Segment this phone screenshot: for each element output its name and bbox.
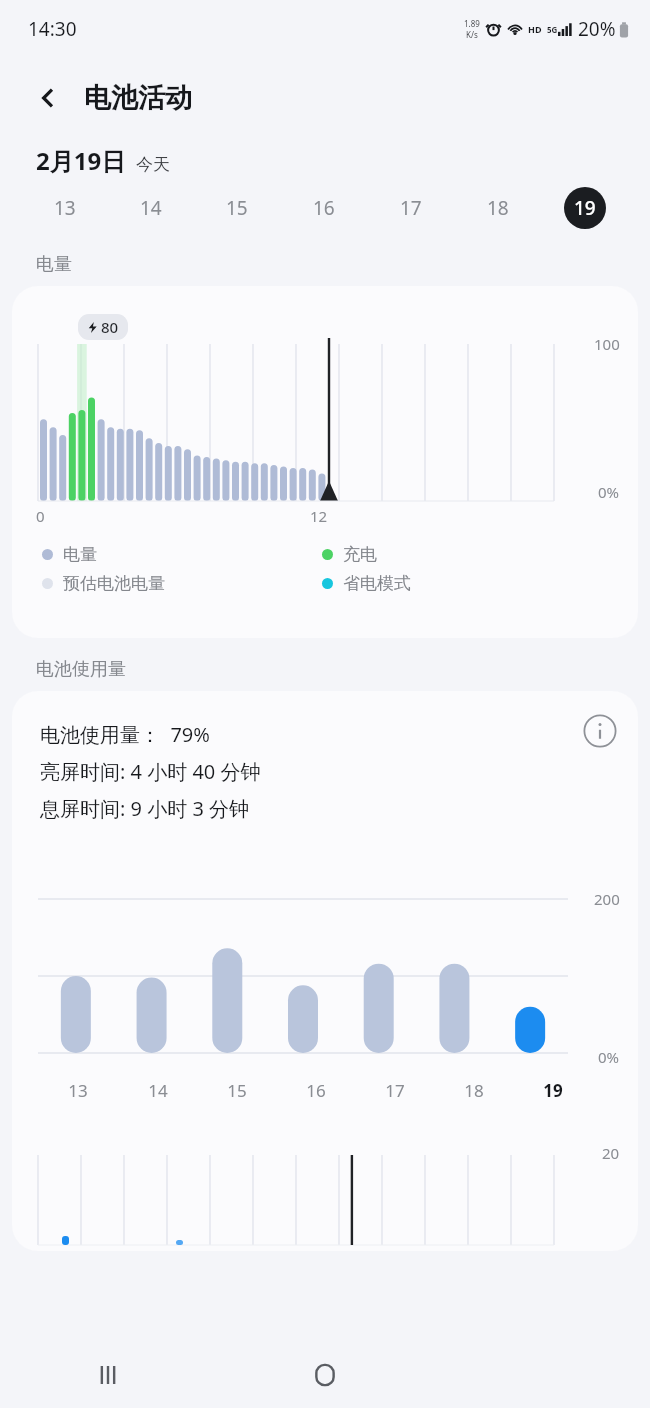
staticText: 80 xyxy=(101,317,119,337)
staticText: HD xyxy=(528,23,542,35)
staticText: 电量 xyxy=(63,544,97,565)
button[interactable]: 预估电池电量 xyxy=(42,573,322,594)
staticText: 电池使用量 xyxy=(36,658,126,681)
staticText: 12 xyxy=(310,506,328,526)
staticText: 今天 xyxy=(136,154,170,175)
button[interactable]: 14 xyxy=(108,177,194,239)
staticText: 0% xyxy=(598,482,620,502)
staticText: 100 xyxy=(594,334,620,354)
staticText: 省电模式 xyxy=(343,573,411,594)
staticText: 17 xyxy=(400,195,422,221)
button[interactable]: 电池使用量： 79% xyxy=(12,691,638,1251)
staticText: 1.89 xyxy=(464,18,480,29)
button[interactable]: Back xyxy=(24,74,72,122)
button[interactable]: 电量 xyxy=(42,544,322,565)
button[interactable]: 100 xyxy=(12,286,638,638)
staticText: 20 xyxy=(602,1143,620,1163)
staticText: 电池使用量： 79% xyxy=(40,721,210,748)
staticText: 19 xyxy=(543,1079,563,1102)
staticText: 14 xyxy=(140,195,162,221)
staticText: 电量 xyxy=(36,253,72,276)
staticText: 200 xyxy=(594,889,620,909)
button[interactable]: 13 xyxy=(22,177,108,239)
staticText: 17 xyxy=(385,1079,405,1102)
button[interactable]: 19 xyxy=(541,177,628,239)
staticText: K/s xyxy=(466,29,478,40)
button[interactable]: 16 xyxy=(280,177,367,239)
staticText: 18 xyxy=(464,1079,484,1102)
staticText: 2月19日 xyxy=(36,144,126,177)
staticText: 13 xyxy=(68,1079,88,1102)
staticText: 预估电池电量 xyxy=(63,573,165,594)
staticText: 15 xyxy=(226,195,248,221)
button[interactable]: 省电模式 xyxy=(322,573,411,594)
staticText: 14:30 xyxy=(28,16,77,42)
button[interactable]: 15 xyxy=(194,177,280,239)
button[interactable]: Home xyxy=(216,1342,433,1408)
staticText: 18 xyxy=(487,195,509,221)
staticText: 19 xyxy=(574,195,596,221)
staticText: 13 xyxy=(54,195,76,221)
staticText: 息屏时间: 9 小时 3 分钟 xyxy=(40,795,250,822)
staticText: 亮屏时间: 4 小时 40 分钟 xyxy=(40,758,261,785)
staticText: 14 xyxy=(148,1079,168,1102)
staticText: 16 xyxy=(306,1079,326,1102)
button[interactable]: 18 xyxy=(454,177,541,239)
button[interactable]: 充电 xyxy=(322,544,377,565)
staticText: 0 xyxy=(36,506,45,526)
staticText: 20% xyxy=(578,16,616,42)
button[interactable]: Recents xyxy=(0,1342,216,1408)
button[interactable]: Info xyxy=(580,711,620,751)
staticText: 充电 xyxy=(343,544,377,565)
staticText: 5G xyxy=(547,24,558,35)
button[interactable]: 17 xyxy=(367,177,454,239)
staticText: 电池活动 xyxy=(84,81,192,115)
staticText: 0% xyxy=(598,1047,620,1067)
staticText: 15 xyxy=(227,1079,247,1102)
staticText: 16 xyxy=(313,195,335,221)
